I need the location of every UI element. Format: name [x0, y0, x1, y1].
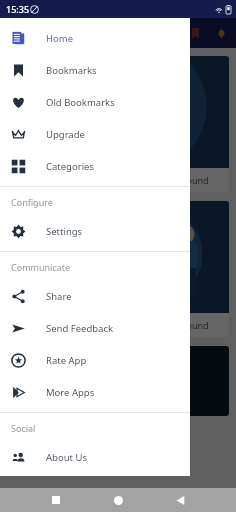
button[interactable]: About Us [0, 441, 190, 473]
staticText: Configure [11, 196, 53, 208]
staticText: Reading content and tips for everyone ar… [14, 319, 209, 331]
button[interactable]: Bookmarks [0, 54, 190, 86]
staticText: Send Feedback [46, 322, 114, 335]
button[interactable]: More Apps [0, 376, 190, 408]
staticText: Share [46, 290, 72, 303]
staticText: Bookmarks [46, 64, 97, 77]
staticText: About Us [46, 451, 87, 464]
staticText: Rate App [46, 354, 87, 367]
button[interactable]: Reading content and tips for everyone ar… [7, 201, 229, 337]
staticText: Communicate [11, 261, 71, 273]
button[interactable]: Categories [0, 150, 190, 182]
button[interactable]: Old Bookmarks [0, 86, 190, 118]
button[interactable]: Reading content and tips for everyone ar… [7, 56, 229, 192]
button[interactable]: Share [0, 280, 190, 312]
button[interactable]: Recent apps [46, 490, 66, 510]
staticText: Categories [46, 160, 94, 173]
staticText: Social [11, 422, 36, 434]
staticText: Settings [46, 225, 83, 238]
staticText: More Apps [46, 386, 95, 399]
staticText: Upgrade [46, 128, 85, 141]
staticText: Home [46, 32, 74, 45]
button[interactable]: Rate App [0, 344, 190, 376]
button[interactable]: Home [108, 490, 128, 510]
button[interactable]: Notifications [214, 26, 229, 41]
button[interactable]: Upgrade [0, 118, 190, 150]
staticText: Reading content and tips for everyone ar… [14, 174, 209, 186]
button[interactable]: PREMIUM [7, 346, 229, 416]
button[interactable]: Back [170, 490, 190, 510]
staticText: 15:35 [6, 3, 30, 15]
button[interactable]: Home [0, 22, 190, 54]
button[interactable]: Send Feedback [0, 312, 190, 344]
staticText: Old Bookmarks [46, 96, 115, 109]
button[interactable]: Settings [0, 215, 190, 247]
button[interactable]: Bookmarks [188, 26, 203, 41]
